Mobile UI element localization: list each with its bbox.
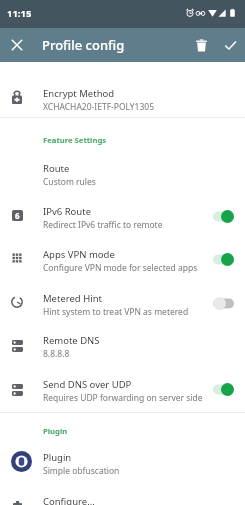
staticText: Hint system to treat VPN as metered [43,306,189,318]
staticText: Apps VPN mode [43,248,115,261]
staticText: Feature Settings [43,135,107,145]
button[interactable]: Delete [187,28,215,62]
staticText: Plugin [43,451,72,464]
staticText: Plugin [43,426,68,436]
button[interactable]: Save [216,28,244,62]
staticText: 11:15 [7,7,32,20]
button[interactable]: Remote DNS [0,323,245,366]
staticText: Metered Hint [43,292,102,305]
staticText: 6 [15,210,20,221]
staticText: 8.8.8.8 [43,348,70,360]
button[interactable]: Route [0,151,245,194]
button[interactable]: Plugin [0,440,245,483]
staticText: Configure VPN mode for selected apps [43,262,198,274]
button[interactable]: Metered Hint [0,281,245,324]
button[interactable]: Configure… [0,484,245,505]
button[interactable]: Close [3,31,31,59]
staticText: IPv6 Route [43,205,92,218]
staticText: Send DNS over UDP [43,378,132,391]
staticText: Simple obfuscation [43,465,120,477]
button[interactable]: Send DNS over UDP [0,367,245,410]
staticText: XCHACHA20-IETF-POLY1305 [43,101,155,113]
staticText: Custom rules [43,176,96,188]
staticText: Remote DNS [43,334,100,347]
button[interactable]: Apps VPN mode [0,237,245,280]
button[interactable]: Encrypt Method [0,76,245,119]
staticText: Encrypt Method [43,87,115,100]
staticText: Profile config [42,36,125,54]
staticText: Redirect IPv6 traffic to remote [43,219,163,231]
button[interactable]: 6 [0,194,245,237]
staticText: Route [43,162,70,175]
staticText: Requires UDP forwarding on server side [43,392,203,404]
staticText: Configure… [43,495,95,505]
